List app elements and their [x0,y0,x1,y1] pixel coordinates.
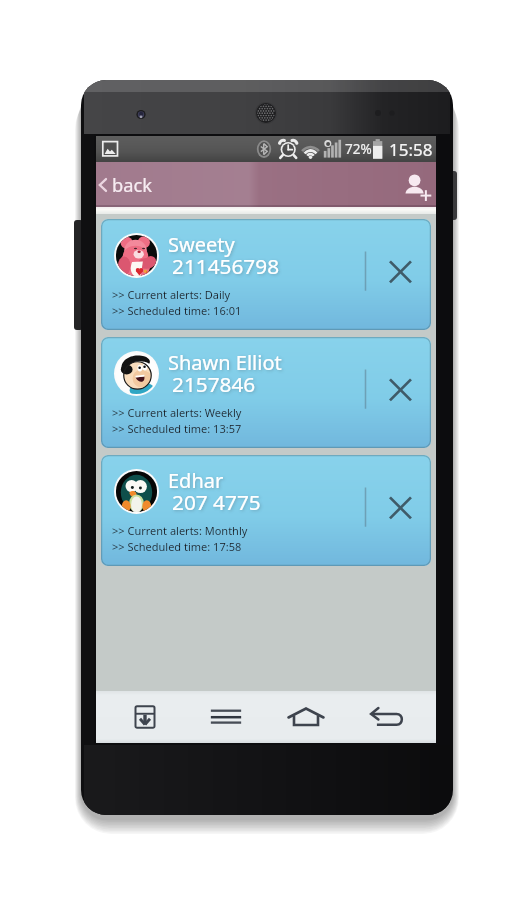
button[interactable]: Delete [363,455,431,566]
staticText: back [112,172,153,197]
button[interactable]: Recent apps [195,691,257,743]
staticText: Sweety [168,231,235,258]
button[interactable]: Shawn Elliot [101,337,431,448]
staticText: >> Current alerts: Daily [112,287,231,302]
button[interactable]: Sweety [101,219,431,330]
button[interactable]: Add contact [393,164,435,206]
button[interactable]: Delete [363,337,431,448]
button[interactable]: Home [275,691,337,743]
staticText: Edhar [168,467,224,494]
button[interactable]: back [96,162,156,207]
staticText: Shawn Elliot [168,349,282,376]
staticText: >> Current alerts: Monthly [112,523,248,538]
staticText: >> Scheduled time: 13:57 [112,421,242,436]
staticText: >> Scheduled time: 17:58 [112,539,242,554]
staticText: 211456798 [172,252,280,280]
staticText: 2157846 [172,370,256,398]
button[interactable]: Hide keyboard [114,691,176,743]
button[interactable]: Edhar [101,455,431,566]
staticText: 72% [345,140,372,158]
staticText: >> Current alerts: Weekly [112,405,242,420]
staticText: 15:58 [389,138,433,161]
button[interactable]: Back [356,691,418,743]
button[interactable]: Delete [363,219,431,330]
staticText: 207 4775 [172,488,261,516]
staticText: >> Scheduled time: 16:01 [112,303,242,318]
